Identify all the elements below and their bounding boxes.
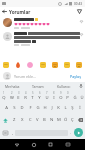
button[interactable]: Tamam xyxy=(25,82,51,90)
staticText: X xyxy=(21,117,24,123)
button[interactable]: Ğ xyxy=(71,90,78,102)
button[interactable]: Ş xyxy=(69,102,76,114)
button[interactable]: Z xyxy=(10,114,18,126)
staticText: 2 xyxy=(11,91,13,95)
button[interactable]: Period xyxy=(68,126,73,139)
staticText: Merhaba xyxy=(5,84,20,89)
staticText: I xyxy=(53,95,55,101)
staticText: B xyxy=(43,117,46,123)
staticText: N xyxy=(50,117,54,123)
staticText: . xyxy=(70,130,72,136)
staticText: Q xyxy=(2,95,6,101)
button[interactable]: Voice input xyxy=(77,82,85,90)
button[interactable]: Paylaş xyxy=(69,74,82,79)
button[interactable]: L xyxy=(62,102,69,114)
button[interactable]: J xyxy=(48,102,55,114)
staticText: S xyxy=(13,105,16,111)
staticText: Y xyxy=(38,95,41,101)
button[interactable]: A xyxy=(2,102,10,114)
button[interactable]: 5 xyxy=(29,90,36,102)
button[interactable]: 7 xyxy=(43,90,50,102)
button[interactable]: D xyxy=(18,102,26,114)
button[interactable]: V xyxy=(34,114,41,126)
button[interactable]: 6 xyxy=(36,90,43,102)
button[interactable]: Comma xyxy=(10,126,15,139)
staticText: G xyxy=(36,105,40,111)
button[interactable]: Send xyxy=(73,127,84,138)
button[interactable]: C xyxy=(26,114,34,126)
staticText: T xyxy=(31,95,34,101)
staticText: Tamam xyxy=(32,84,44,89)
button[interactable]: 8 xyxy=(50,90,57,102)
button[interactable]: S xyxy=(10,102,18,114)
button[interactable]: Emoji 2 xyxy=(14,61,22,69)
button[interactable]: G xyxy=(34,102,41,114)
button[interactable]: H xyxy=(41,102,48,114)
staticText: 0 xyxy=(67,91,69,95)
staticText: Ç xyxy=(71,117,74,123)
button[interactable]: F xyxy=(26,102,34,114)
staticText: Ö xyxy=(64,117,68,123)
button[interactable]: N xyxy=(48,114,55,126)
staticText: E xyxy=(17,95,20,101)
button[interactable]: Home xyxy=(25,139,42,150)
button[interactable]: Emoji 3 xyxy=(26,61,34,69)
staticText: K xyxy=(57,105,60,111)
staticText: A xyxy=(5,105,8,111)
staticText: C xyxy=(29,117,32,123)
button[interactable]: Back xyxy=(0,7,9,16)
button[interactable]: 2 xyxy=(8,90,15,102)
staticText: O xyxy=(59,95,63,101)
staticText: 5 xyxy=(32,91,34,95)
button[interactable]: Ö xyxy=(62,114,69,126)
staticText: , xyxy=(12,130,14,136)
button[interactable]: Yorum ekle... xyxy=(14,74,69,79)
staticText: L xyxy=(64,105,67,111)
button[interactable]: Emoji 4 xyxy=(39,61,47,69)
staticText: 9 xyxy=(60,91,62,95)
staticText: İ xyxy=(79,105,81,111)
button[interactable]: 1 xyxy=(0,90,8,102)
staticText: Yorumlar xyxy=(9,9,31,15)
button[interactable]: Ç xyxy=(69,114,76,126)
button[interactable]: Like comment xyxy=(80,33,83,36)
button[interactable]: Like xyxy=(80,20,83,23)
button[interactable]: Emoji 1 xyxy=(2,61,10,69)
staticText: Ü xyxy=(80,95,84,101)
button[interactable]: Backspace xyxy=(76,114,85,126)
button[interactable]: Emoji 6 xyxy=(63,61,71,69)
staticText: 3 xyxy=(18,91,20,95)
button[interactable]: İ xyxy=(76,102,83,114)
button[interactable]: 4 xyxy=(22,90,29,102)
button[interactable]: Back xyxy=(8,139,25,150)
button[interactable]: K xyxy=(55,102,62,114)
button[interactable]: 3 xyxy=(15,90,22,102)
staticText: Z xyxy=(13,117,16,123)
staticText: Yorum ekle... xyxy=(14,74,36,79)
button[interactable]: B xyxy=(41,114,48,126)
button[interactable]: Kullanıcı xyxy=(51,82,77,90)
button[interactable]: Ü xyxy=(78,90,85,102)
staticText: W xyxy=(10,95,14,101)
staticText: Paylaş xyxy=(70,74,81,79)
button[interactable]: Emoji 5 xyxy=(51,61,59,69)
staticText: D xyxy=(20,105,24,111)
button[interactable]: Hide keyboard xyxy=(59,139,76,150)
button[interactable]: Symbols xyxy=(1,126,10,139)
button[interactable]: 9 xyxy=(57,90,64,102)
button[interactable]: Send xyxy=(75,7,84,16)
button[interactable]: Recents xyxy=(42,139,59,150)
staticText: P xyxy=(66,95,69,101)
staticText: F xyxy=(29,105,32,111)
button[interactable]: Shift xyxy=(0,114,10,126)
staticText: Kullanıcı xyxy=(57,84,71,89)
button[interactable]: X xyxy=(18,114,26,126)
button[interactable]: Merhaba xyxy=(0,82,25,90)
button[interactable]: Emoji 7 xyxy=(75,61,83,69)
button[interactable]: 0 xyxy=(64,90,71,102)
button[interactable]: M xyxy=(55,114,62,126)
staticText: 7 xyxy=(46,91,48,95)
staticText: V xyxy=(36,117,39,123)
staticText: U xyxy=(45,95,49,101)
